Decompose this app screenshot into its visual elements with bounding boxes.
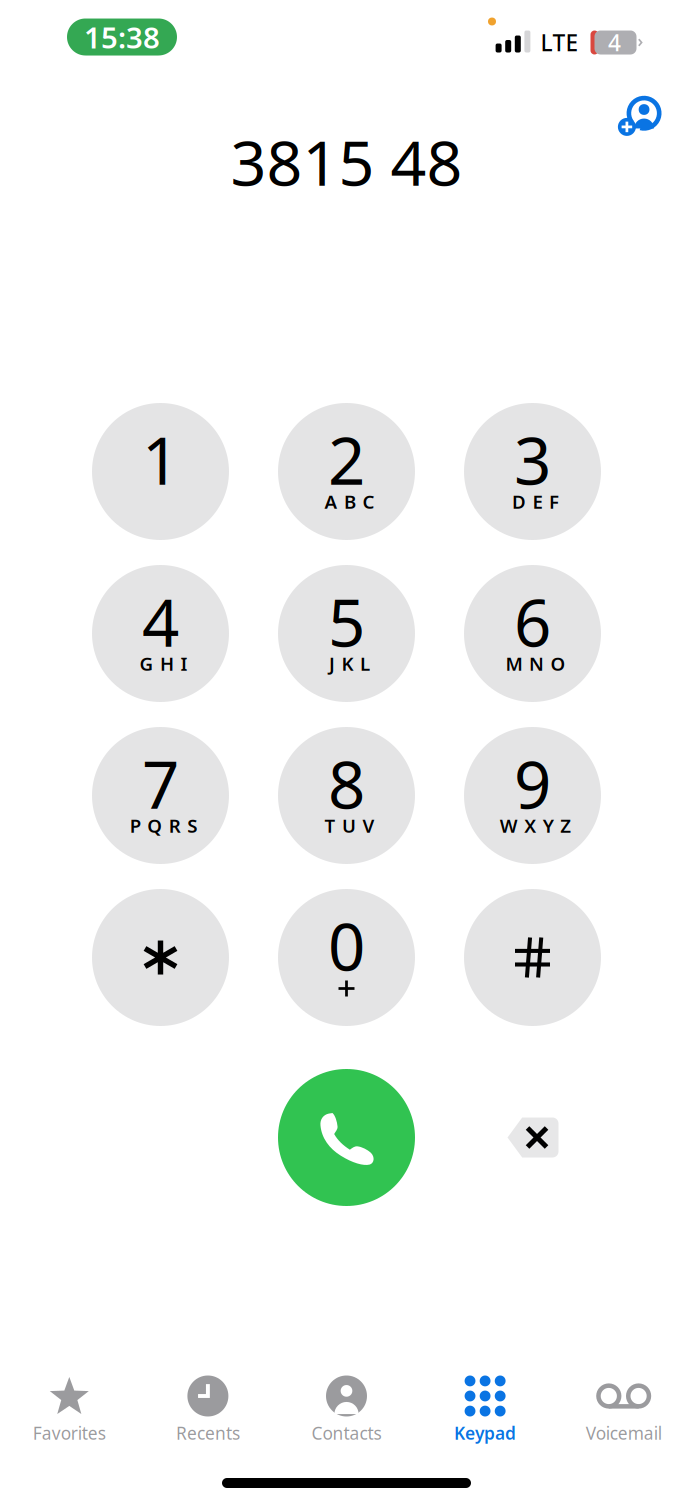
staticText: DEF (512, 489, 559, 514)
staticText: Favorites (33, 1421, 106, 1444)
staticText: 1 (142, 416, 179, 503)
staticText: TUV (324, 813, 374, 838)
button[interactable]: 1 (92, 403, 229, 540)
staticText: WXYZ (500, 813, 571, 838)
button[interactable]: Favorites (0, 1367, 139, 1450)
button[interactable]: 3 (464, 403, 601, 540)
button[interactable]: 8 (278, 727, 415, 864)
staticText: 4 (608, 27, 621, 57)
staticText: GHI (139, 651, 187, 676)
button[interactable]: Contacts (277, 1367, 416, 1450)
button[interactable]: 2 (278, 403, 415, 540)
staticText: 8 (328, 740, 365, 827)
staticText: 15:38 (84, 17, 160, 56)
button[interactable]: 0 (278, 889, 415, 1026)
staticText: 3815 48 (230, 120, 462, 203)
button[interactable]: Delete (505, 1117, 558, 1157)
button[interactable]: 6 (464, 565, 601, 702)
staticText: 0 (328, 902, 365, 989)
staticText: 3 (514, 416, 551, 503)
button[interactable] (92, 889, 229, 1026)
button[interactable]: Call (278, 1069, 415, 1206)
staticText: LTE (540, 27, 578, 57)
staticText: 6 (514, 578, 551, 665)
button[interactable]: Add Number to Contacts (608, 89, 670, 145)
staticText: MNO (505, 651, 565, 676)
staticText: 7 (142, 740, 179, 827)
staticText: 5 (328, 578, 365, 665)
button[interactable]: 9 (464, 727, 601, 864)
button[interactable] (464, 889, 601, 1026)
button[interactable]: Recents (139, 1367, 277, 1450)
button[interactable]: Voicemail (554, 1367, 693, 1450)
staticText: 4 (142, 578, 179, 665)
staticText: 9 (514, 740, 551, 827)
button[interactable]: Keypad (416, 1367, 554, 1450)
staticText: Contacts (311, 1421, 381, 1444)
staticText: PQRS (130, 813, 197, 838)
staticText: Keypad (454, 1421, 516, 1444)
staticText: Recents (176, 1421, 240, 1444)
staticText: Voicemail (586, 1421, 662, 1444)
staticText: ABC (324, 489, 374, 514)
button[interactable]: 7 (92, 727, 229, 864)
staticText: 2 (328, 416, 365, 503)
button[interactable]: 4 (92, 565, 229, 702)
button[interactable]: 5 (278, 565, 415, 702)
staticText: JKL (329, 651, 370, 676)
